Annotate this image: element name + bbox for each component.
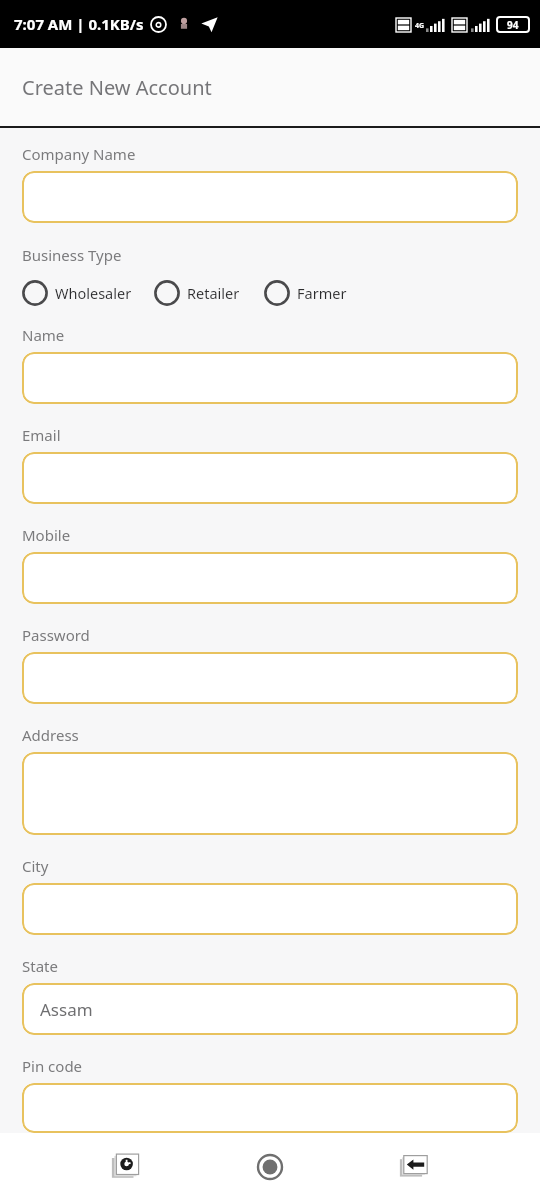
button[interactable]: Assam (22, 983, 518, 1035)
staticText: Assam (40, 998, 93, 1021)
staticText: 4G (415, 21, 425, 31)
staticText: Mobile (22, 525, 71, 545)
button[interactable]: Back (388, 1141, 440, 1193)
staticText: Pin code (22, 1056, 83, 1076)
staticText: Password (22, 625, 90, 645)
button[interactable] (22, 171, 518, 223)
button[interactable]: Recent apps (100, 1141, 152, 1193)
button[interactable]: Wholesaler (22, 278, 132, 308)
staticText: Email (22, 425, 61, 445)
staticText: Retailer (187, 283, 240, 303)
button[interactable] (22, 652, 518, 704)
button[interactable]: Farmer (264, 278, 347, 308)
button[interactable] (22, 752, 518, 835)
staticText: Name (22, 325, 65, 345)
button[interactable] (22, 352, 518, 404)
staticText: 94 (507, 18, 519, 32)
button[interactable] (22, 1083, 518, 1133)
staticText: Farmer (297, 283, 347, 303)
staticText: Company Name (22, 144, 136, 164)
staticText: Address (22, 725, 79, 745)
staticText: City (22, 856, 49, 876)
button[interactable] (22, 552, 518, 604)
staticText: Create New Account (22, 74, 212, 101)
button[interactable] (22, 452, 518, 504)
staticText: 7:07 AM | 0.1KB/s (14, 14, 144, 34)
button[interactable] (22, 883, 518, 935)
button[interactable]: Home (244, 1141, 296, 1193)
button[interactable]: Retailer (154, 278, 240, 308)
staticText: State (22, 956, 58, 976)
staticText: Wholesaler (55, 283, 132, 303)
staticText: Business Type (22, 245, 122, 265)
